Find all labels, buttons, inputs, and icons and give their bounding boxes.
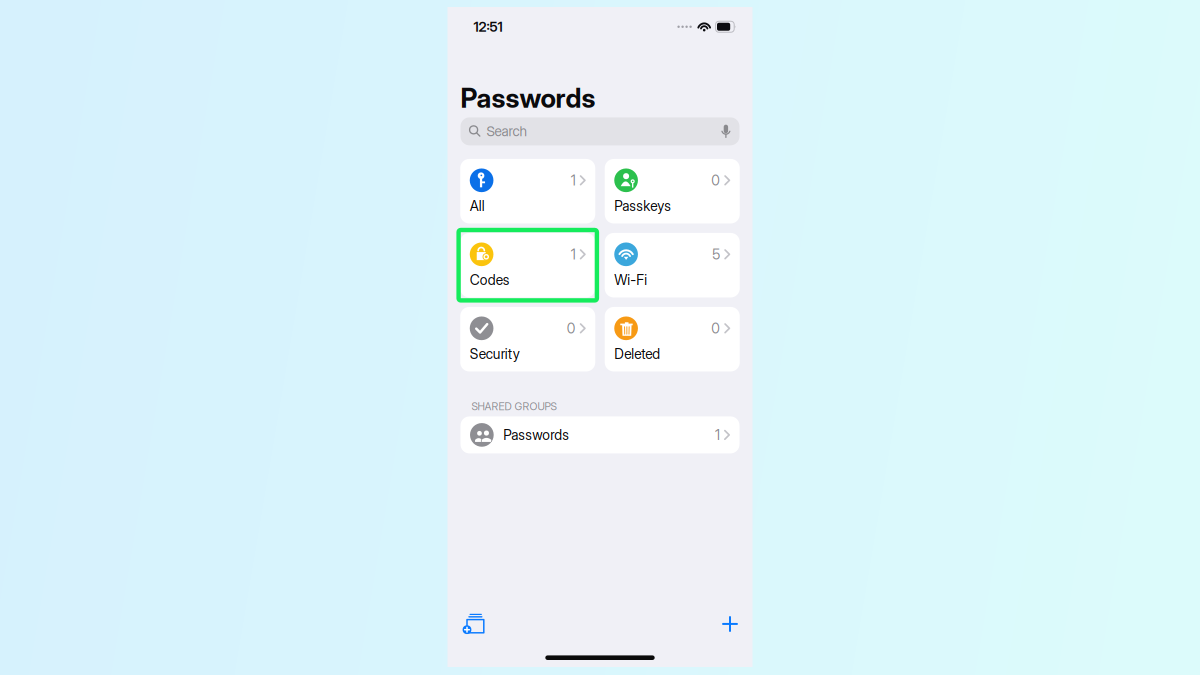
- staticText: Wi-Fi: [614, 272, 647, 288]
- staticText: 1: [571, 246, 576, 263]
- staticText: Passwords: [460, 82, 595, 114]
- button[interactable]: 1: [460, 159, 595, 223]
- staticText: SHARED GROUPS: [471, 400, 556, 413]
- staticText: Security: [470, 346, 520, 362]
- staticText: 12:51: [473, 18, 502, 35]
- staticText: 0: [567, 320, 576, 337]
- staticText: Codes: [470, 272, 510, 288]
- button[interactable]: 0: [460, 307, 595, 371]
- button[interactable]: 0: [605, 307, 740, 371]
- staticText: 1: [715, 426, 720, 443]
- staticText: Deleted: [614, 346, 660, 362]
- staticText: Search: [486, 123, 527, 140]
- staticText: 1: [571, 172, 576, 189]
- button[interactable]: Passwords: [447, 416, 752, 453]
- staticText: 5: [712, 246, 720, 263]
- button[interactable]: Add New Password: [715, 609, 745, 639]
- button[interactable]: 0: [605, 159, 740, 223]
- button[interactable]: 5: [605, 233, 740, 297]
- staticText: Passkeys: [614, 198, 671, 214]
- staticText: 0: [711, 172, 720, 189]
- staticText: All: [470, 198, 485, 214]
- staticText: Passwords: [503, 426, 569, 443]
- button[interactable]: New Shared Group: [459, 609, 489, 639]
- button[interactable]: 1: [460, 233, 595, 297]
- staticText: 0: [711, 320, 720, 337]
